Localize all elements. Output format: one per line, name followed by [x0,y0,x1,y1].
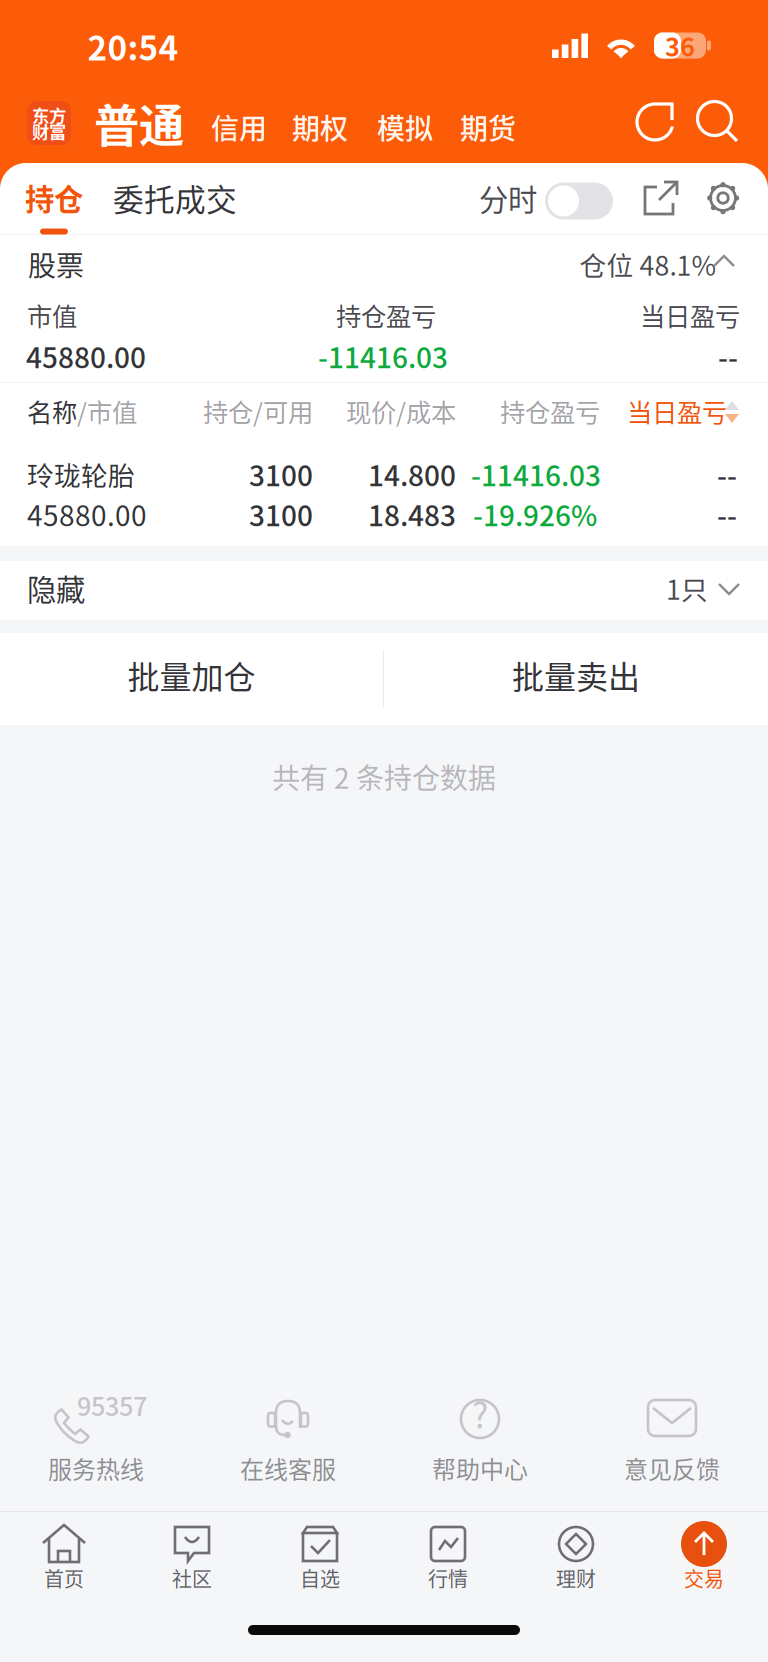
staticText: 仓位 48.1% [579,245,716,283]
staticText: 持仓盈亏 [500,393,600,429]
button[interactable]: 95357 [16,1368,176,1498]
staticText: ? [472,1388,488,1439]
button[interactable]: 行情 [384,1514,512,1602]
staticText: 批量加仓 [127,652,255,698]
button[interactable]: 持仓 [6,162,102,233]
button[interactable]: 期权 [284,98,356,156]
staticText: 持仓 [25,176,83,219]
staticText: 隐藏 [27,567,85,609]
staticText: 共有 2 条持仓数据 [272,756,496,797]
staticText: 当日盈亏 [627,393,727,429]
staticText: 普通 [94,90,184,156]
staticText: 3100 [249,454,313,494]
button[interactable]: 自选 [256,1514,384,1602]
staticText: 股票 [28,244,84,284]
staticText: 模拟 [377,107,433,147]
staticText: 名称 [27,393,77,429]
staticText: 玲珑轮胎 [27,455,135,493]
staticText: 期权 [292,107,348,147]
staticText: 在线客服 [240,1451,336,1485]
button[interactable]: 玲珑轮胎 [0,436,768,542]
staticText: 当日盈亏 [640,297,740,333]
staticText: 持仓/可用 [203,393,313,429]
staticText: 分时 [479,177,537,219]
button[interactable]: ? [400,1368,560,1498]
button[interactable]: 收起 [712,247,746,281]
button[interactable]: 委托成交 [95,167,255,229]
staticText: 市值 [27,297,77,333]
staticText: 自选 [300,1563,340,1592]
staticText: 1只 [666,569,708,607]
button[interactable]: 分享 [641,178,681,218]
staticText: 信用 [211,107,267,147]
staticText: 期货 [460,107,516,147]
button[interactable]: 在线客服 [208,1368,368,1498]
staticText: 财富 [32,118,66,144]
button[interactable]: 刷新 [633,100,677,144]
button[interactable]: 搜索 [696,100,740,144]
button[interactable]: 批量卖出 [384,633,768,725]
button[interactable]: 批量加仓 [0,633,383,725]
button[interactable]: 意见反馈 [592,1368,752,1498]
button[interactable]: 期货 [452,98,524,156]
staticText: 现价/成本 [346,393,456,429]
button[interactable]: 理财 [512,1514,640,1602]
staticText: 95357 [77,1387,147,1423]
staticText: -11416.03 [318,336,448,376]
button[interactable]: 名称 [0,383,768,440]
button[interactable]: 分时开关 [545,182,613,219]
staticText: 持仓盈亏 [336,297,436,333]
staticText: 45880.00 [27,494,147,534]
button[interactable]: 模拟 [369,98,441,156]
staticText: -19.926% [473,494,597,534]
staticText: 服务热线 [48,1451,144,1485]
staticText: -- [717,494,737,534]
staticText: 理财 [556,1563,596,1592]
staticText: 首页 [44,1563,84,1592]
button[interactable]: 社区 [128,1514,256,1602]
staticText: 18.483 [368,494,456,534]
staticText: 3100 [249,494,313,534]
staticText: /市值 [77,393,137,429]
button[interactable]: 隐藏 [0,558,768,617]
staticText: 36 [665,27,695,64]
staticText: 行情 [428,1563,468,1592]
button[interactable]: 交易 [640,1514,768,1602]
staticText: 帮助中心 [432,1451,528,1485]
button[interactable]: 信用 [203,98,275,156]
staticText: 社区 [172,1563,212,1592]
staticText: 委托成交 [113,176,237,220]
staticText: 交易 [684,1563,724,1592]
staticText: 20:54 [87,22,178,70]
button[interactable]: 设置 [702,177,744,219]
staticText: -- [718,336,738,376]
staticText: -- [717,454,737,494]
staticText: 意见反馈 [624,1451,720,1485]
staticText: -11416.03 [471,454,601,494]
staticText: 45880.00 [26,336,146,376]
staticText: 东方 [32,102,66,128]
staticText: 14.800 [368,454,456,494]
staticText: 批量卖出 [512,652,640,698]
button[interactable]: 首页 [0,1514,128,1602]
